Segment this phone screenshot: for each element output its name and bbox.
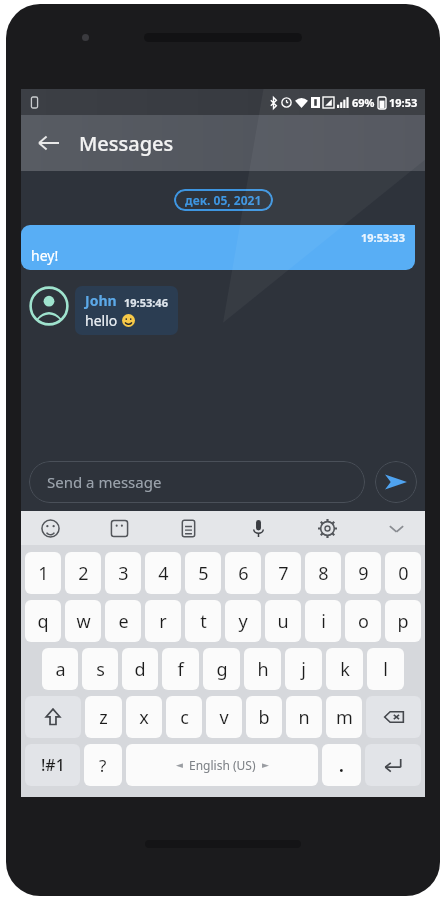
button[interactable]: w xyxy=(65,600,101,642)
button[interactable]: i xyxy=(305,600,341,642)
button[interactable]: z xyxy=(85,696,122,738)
staticText: 19:53:46 xyxy=(124,295,168,310)
button[interactable]: x xyxy=(126,696,162,738)
button[interactable]: 19:53:33 xyxy=(21,225,415,270)
button[interactable]: g xyxy=(203,648,240,690)
button[interactable]: l xyxy=(367,648,404,690)
button[interactable]: h xyxy=(244,648,281,690)
staticText: a xyxy=(55,657,66,682)
button[interactable]: !#1 xyxy=(25,744,80,786)
staticText: John xyxy=(85,291,117,310)
button[interactable]: Back xyxy=(29,123,69,163)
button[interactable]: r xyxy=(145,600,181,642)
staticText: h xyxy=(257,657,269,682)
button[interactable]: s xyxy=(82,648,118,690)
other: John avatar xyxy=(29,286,69,326)
button[interactable]: 2 xyxy=(65,552,101,594)
button[interactable]: . xyxy=(322,744,361,786)
button[interactable]: Emoji xyxy=(35,513,65,543)
button[interactable]: 7 xyxy=(265,552,301,594)
button[interactable]: Settings xyxy=(312,513,342,543)
staticText: t xyxy=(200,609,207,634)
staticText: f xyxy=(177,657,184,682)
staticText: 0 xyxy=(398,561,409,586)
staticText: 6 xyxy=(238,561,249,586)
staticText: 19:53 xyxy=(389,95,418,110)
staticText: c xyxy=(180,705,189,730)
staticText: . xyxy=(339,754,344,777)
button[interactable]: 1 xyxy=(25,552,61,594)
staticText: 2 xyxy=(78,561,89,586)
staticText: !#1 xyxy=(41,754,65,776)
staticText: o xyxy=(358,609,369,634)
staticText: k xyxy=(340,657,350,682)
staticText: 3 xyxy=(118,561,129,586)
button[interactable]: p xyxy=(385,600,421,642)
button[interactable]: j xyxy=(285,648,322,690)
button[interactable]: 8 xyxy=(305,552,341,594)
button[interactable]: Clipboard xyxy=(173,513,203,543)
button[interactable]: q xyxy=(25,600,61,642)
staticText: d xyxy=(134,657,146,682)
staticText: ◄ xyxy=(176,760,183,770)
staticText: x xyxy=(139,705,149,730)
staticText: hey! xyxy=(31,246,59,265)
staticText: p xyxy=(397,609,409,634)
button[interactable]: 6 xyxy=(225,552,261,594)
button[interactable]: John xyxy=(75,286,178,335)
staticText: n xyxy=(298,705,310,730)
staticText: s xyxy=(96,657,105,682)
button[interactable]: Shift xyxy=(25,696,81,738)
staticText: ► xyxy=(262,760,269,770)
button[interactable]: Send a message xyxy=(29,461,365,503)
button[interactable]: 9 xyxy=(345,552,381,594)
staticText: i xyxy=(321,609,326,634)
button[interactable]: 5 xyxy=(185,552,221,594)
staticText: ? xyxy=(99,754,107,777)
staticText: 9 xyxy=(358,561,369,586)
button[interactable]: ◄ xyxy=(126,744,318,786)
button[interactable]: n xyxy=(286,696,322,738)
staticText: Messages xyxy=(79,130,174,157)
button[interactable]: u xyxy=(265,600,301,642)
button[interactable]: 0 xyxy=(385,552,421,594)
staticText: 7 xyxy=(278,561,289,586)
button[interactable]: c xyxy=(166,696,202,738)
staticText: Send a message xyxy=(47,472,162,492)
staticText: English (US) xyxy=(189,757,256,773)
staticText: w xyxy=(76,609,91,634)
button[interactable]: Enter xyxy=(365,744,421,786)
staticText: b xyxy=(258,705,270,730)
button[interactable]: 3 xyxy=(105,552,141,594)
staticText: дек. 05, 2021 xyxy=(185,192,262,208)
button[interactable]: e xyxy=(105,600,141,642)
button[interactable]: k xyxy=(326,648,363,690)
staticText: j xyxy=(301,657,306,682)
staticText: r xyxy=(159,609,167,634)
button[interactable]: Hide keyboard xyxy=(381,513,411,543)
staticText: q xyxy=(37,609,49,634)
button[interactable]: t xyxy=(185,600,221,642)
button[interactable]: 4 xyxy=(145,552,181,594)
staticText: e xyxy=(118,609,129,634)
staticText: 4 xyxy=(158,561,169,586)
staticText: z xyxy=(99,705,108,730)
button[interactable]: Stickers xyxy=(104,513,134,543)
button[interactable]: Send xyxy=(375,461,417,503)
button[interactable]: o xyxy=(345,600,381,642)
staticText: 8 xyxy=(318,561,329,586)
button[interactable]: a xyxy=(42,648,78,690)
staticText: g xyxy=(216,657,228,682)
staticText: l xyxy=(383,657,388,682)
button[interactable]: дек. 05, 2021 xyxy=(174,189,273,211)
staticText: hello xyxy=(85,311,118,330)
button[interactable]: Voice input xyxy=(243,513,273,543)
button[interactable]: ? xyxy=(84,744,122,786)
button[interactable]: v xyxy=(206,696,242,738)
button[interactable]: y xyxy=(225,600,261,642)
button[interactable]: Backspace xyxy=(366,696,421,738)
button[interactable]: b xyxy=(246,696,282,738)
button[interactable]: m xyxy=(326,696,362,738)
button[interactable]: f xyxy=(162,648,199,690)
button[interactable]: d xyxy=(122,648,158,690)
